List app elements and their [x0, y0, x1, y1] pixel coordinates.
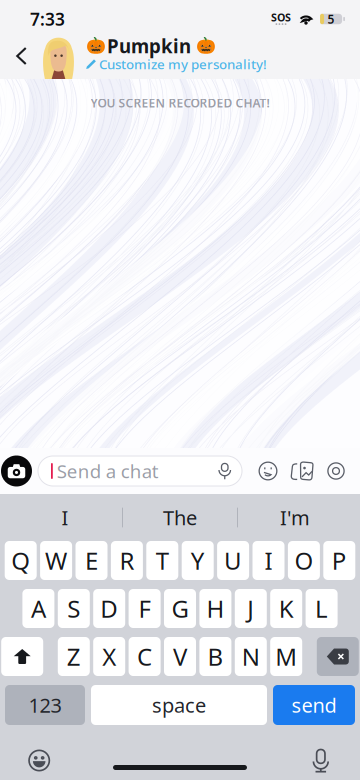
staticText: 🎃 — [196, 37, 216, 55]
staticText: SOS — [271, 10, 291, 24]
staticText: 123 — [28, 692, 61, 718]
button[interactable]: Q — [5, 541, 37, 580]
staticText: E — [85, 545, 98, 576]
button[interactable]: V — [164, 637, 196, 676]
staticText: G — [171, 593, 188, 624]
staticText: V — [173, 641, 187, 672]
button[interactable]: C — [129, 637, 161, 676]
button[interactable]: Delete — [317, 637, 359, 676]
staticText: S — [67, 593, 80, 624]
button[interactable]: Voice note — [218, 463, 242, 479]
staticText: A — [31, 593, 46, 624]
button[interactable]: D — [93, 589, 125, 628]
button[interactable]: R — [111, 541, 143, 580]
staticText: 7:33 — [30, 7, 65, 30]
button[interactable]: T — [146, 541, 178, 580]
staticText: I'm — [280, 504, 310, 531]
staticText: B — [207, 641, 223, 672]
staticText: Customize my personality! — [99, 55, 267, 73]
staticText: C — [137, 641, 152, 672]
button[interactable]: J — [235, 589, 267, 628]
staticText: YOU SCREEN RECORDED CHAT! — [90, 95, 269, 111]
button[interactable]: G — [164, 589, 196, 628]
staticText: L — [315, 593, 328, 624]
button[interactable]: Shift — [1, 637, 43, 676]
staticText: 5 — [328, 11, 335, 27]
button[interactable]: Y — [182, 541, 214, 580]
button[interactable]: Emoji keyboard — [1, 748, 77, 772]
button[interactable]: Stickers — [285, 453, 319, 489]
staticText: W — [45, 545, 67, 576]
staticText: K — [279, 593, 294, 624]
button[interactable]: Z — [58, 637, 90, 676]
button[interactable]: Back — [0, 33, 43, 79]
button[interactable]: Emoji — [251, 453, 285, 489]
button[interactable]: U — [217, 541, 249, 580]
staticText: Y — [191, 545, 205, 576]
button[interactable]: F — [129, 589, 161, 628]
button[interactable]: N — [235, 637, 267, 676]
button[interactable]: I'm — [238, 495, 352, 539]
button[interactable]: I — [8, 495, 122, 539]
staticText: Q — [11, 545, 30, 576]
button[interactable]: P — [323, 541, 355, 580]
button[interactable]: L — [306, 589, 338, 628]
staticText: The — [163, 504, 197, 531]
button[interactable]: send — [273, 685, 355, 725]
staticText: H — [206, 593, 224, 624]
staticText: 🎃 — [86, 37, 106, 55]
staticText: Send a chat — [57, 459, 159, 483]
button[interactable]: W — [40, 541, 72, 580]
staticText: O — [294, 545, 313, 576]
button[interactable]: I — [252, 541, 284, 580]
button[interactable]: The — [123, 495, 237, 539]
staticText: J — [247, 593, 254, 624]
staticText: P — [332, 545, 347, 576]
button[interactable]: Customize my personality! — [86, 56, 267, 72]
button[interactable]: K — [270, 589, 302, 628]
staticText: space — [152, 692, 206, 718]
staticText: I — [264, 545, 272, 576]
button[interactable]: Dictation — [283, 748, 359, 772]
button[interactable]: M — [270, 637, 302, 676]
staticText: M — [275, 641, 297, 672]
staticText: F — [139, 593, 151, 624]
button[interactable]: Map — [319, 453, 353, 489]
button[interactable]: A — [22, 589, 54, 628]
button[interactable]: S — [58, 589, 90, 628]
staticText: X — [102, 641, 116, 672]
staticText: R — [119, 545, 134, 576]
staticText: Pumpkin — [107, 34, 191, 58]
button[interactable]: X — [93, 637, 125, 676]
staticText: T — [156, 545, 169, 576]
staticText: send — [291, 692, 336, 718]
button[interactable]: 123 — [5, 685, 85, 725]
button[interactable]: H — [199, 589, 231, 628]
button[interactable]: O — [288, 541, 320, 580]
staticText: D — [100, 593, 118, 624]
staticText: Z — [67, 641, 81, 672]
staticText: I — [61, 504, 68, 531]
button[interactable]: Camera — [1, 455, 32, 486]
staticText: N — [242, 641, 260, 672]
button[interactable]: E — [75, 541, 107, 580]
staticText: U — [224, 545, 242, 576]
button[interactable]: B — [199, 637, 231, 676]
button[interactable]: space — [91, 685, 267, 725]
